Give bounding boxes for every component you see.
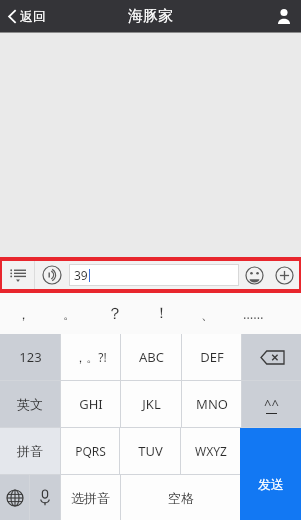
staticText: …… [243,305,264,323]
staticText: ？ [107,304,123,324]
button[interactable]: JKL [121,381,181,427]
button[interactable]: ！ [138,293,184,334]
staticText: ， [17,306,30,322]
button[interactable]: 39 [69,264,239,286]
staticText: 选拼音 [71,490,110,506]
button[interactable]: Input options [2,261,34,289]
staticText: 。 [63,306,76,322]
button[interactable]: 选拼音 [61,475,120,520]
button[interactable]: GHI [61,381,120,427]
staticText: MNO [196,395,228,413]
staticText: ^^ [264,395,279,413]
button[interactable]: ，。?! [61,334,120,380]
button[interactable]: ABC [121,334,181,380]
button[interactable]: 。 [46,293,92,334]
button[interactable]: …… [230,293,276,334]
staticText: JKL [142,395,161,413]
staticText: ABC [139,348,164,366]
staticText: ！ [154,304,169,323]
button[interactable]: Voice [30,475,60,520]
staticText: WXYZ [195,443,227,459]
staticText: TUV [138,442,163,460]
button[interactable]: PQRS [61,428,119,474]
staticText: 返回 [20,8,46,24]
button[interactable]: 发送 [240,474,301,520]
button[interactable]: Emoji [239,261,269,289]
button[interactable]: Switch language [0,475,29,520]
button[interactable]: Backspace [242,334,301,380]
button[interactable]: ， [0,293,46,334]
button[interactable]: MNO [182,381,241,427]
staticText: 39 [74,267,88,283]
staticText: 发送 [258,476,284,492]
staticText: 、 [201,306,214,322]
button[interactable]: Voice input [35,261,69,289]
button[interactable]: ？ [92,293,138,334]
button[interactable]: 空格 [121,475,240,520]
button[interactable]: 拼音 [0,428,60,474]
staticText: 英文 [17,396,43,412]
button[interactable]: WXYZ [181,428,240,474]
button[interactable]: 123 [0,334,60,380]
button[interactable]: More [269,261,299,289]
staticText: PQRS [75,443,106,459]
staticText: 海豚家 [128,7,173,26]
button[interactable]: 、 [184,293,230,334]
button[interactable]: DEF [182,334,241,380]
button[interactable]: Profile [267,2,301,30]
button[interactable]: 英文 [0,381,60,427]
staticText: GHI [79,395,103,413]
staticText: ，。?! [74,349,107,365]
staticText: 123 [19,348,42,366]
staticText: DEF [200,348,224,366]
button[interactable]: 返回 [0,4,54,28]
staticText: 空格 [168,490,194,506]
button[interactable]: ^^ [242,381,301,427]
staticText: 拼音 [17,443,43,459]
button[interactable]: TUV [120,428,180,474]
